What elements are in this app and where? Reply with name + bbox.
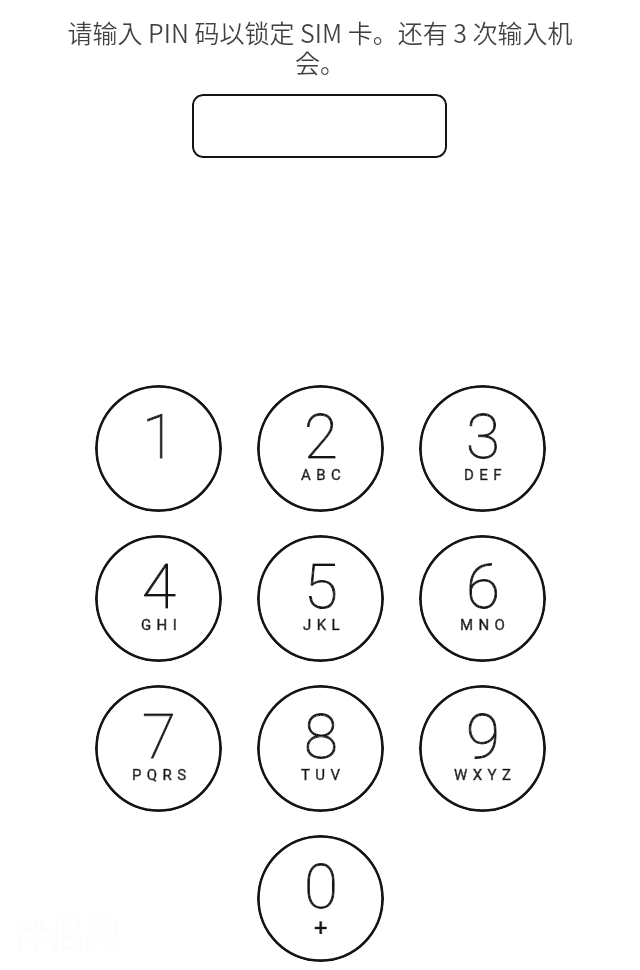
button[interactable]: Key 0 bbox=[257, 835, 384, 962]
staticText: 2 bbox=[304, 400, 338, 473]
staticText: 2 bbox=[304, 400, 338, 473]
staticText: JKL bbox=[303, 616, 345, 634]
staticText: 1 bbox=[142, 400, 176, 473]
staticText: WXYZ bbox=[454, 766, 517, 784]
button[interactable]: Key 4 GHI bbox=[95, 535, 222, 662]
staticText: 6 bbox=[466, 550, 500, 623]
staticText: ABC bbox=[301, 466, 347, 484]
staticText: WXYZ bbox=[454, 766, 517, 784]
button[interactable]: Key 3 DEF bbox=[419, 385, 546, 512]
staticText: ABC bbox=[301, 466, 347, 484]
staticText: GHI bbox=[141, 616, 183, 634]
staticText: 5 bbox=[304, 550, 338, 623]
staticText: 8 bbox=[304, 700, 338, 773]
button[interactable]: Key 6 MNO bbox=[419, 535, 546, 662]
staticText: 9 bbox=[466, 700, 500, 773]
staticText: 3 bbox=[466, 400, 500, 473]
staticText: PQRS bbox=[132, 766, 192, 784]
staticText: 4 bbox=[142, 550, 176, 623]
staticText: 6 bbox=[466, 550, 500, 623]
button[interactable]: Key 5 JKL bbox=[257, 535, 384, 662]
button[interactable]: Key 7 PQRS bbox=[95, 685, 222, 812]
staticText: GHI bbox=[141, 616, 183, 634]
staticText: DEF bbox=[464, 466, 507, 484]
staticText: 7 bbox=[142, 700, 176, 773]
staticText: DEF bbox=[464, 466, 507, 484]
staticText: 3 bbox=[466, 400, 500, 473]
staticText: 1 bbox=[142, 400, 176, 473]
button[interactable]: Key 8 TUV bbox=[257, 685, 384, 812]
staticText: TUV bbox=[301, 766, 346, 784]
staticText: + bbox=[314, 914, 328, 934]
button[interactable]: PIN input field bbox=[192, 94, 447, 158]
button[interactable]: Key 1 bbox=[95, 385, 222, 512]
staticText: MNO bbox=[460, 616, 511, 634]
staticText: 4 bbox=[142, 550, 176, 623]
staticText: 9 bbox=[466, 700, 500, 773]
staticText: JKL bbox=[303, 616, 345, 634]
staticText: 0 bbox=[304, 850, 338, 923]
staticText: TUV bbox=[301, 766, 346, 784]
staticText: MNO bbox=[460, 616, 511, 634]
staticText: + bbox=[314, 914, 328, 934]
staticText: 0 bbox=[304, 850, 338, 923]
staticText: 8 bbox=[304, 700, 338, 773]
button[interactable]: Key 9 WXYZ bbox=[419, 685, 546, 812]
button[interactable]: Key 2 ABC bbox=[257, 385, 384, 512]
staticText: 7 bbox=[142, 700, 176, 773]
staticText: 请输入 PIN 码以锁定 SIM 卡。还有 3 次输入机会。 bbox=[66, 14, 574, 80]
staticText: 5 bbox=[304, 550, 338, 623]
staticText: PQRS bbox=[132, 766, 192, 784]
